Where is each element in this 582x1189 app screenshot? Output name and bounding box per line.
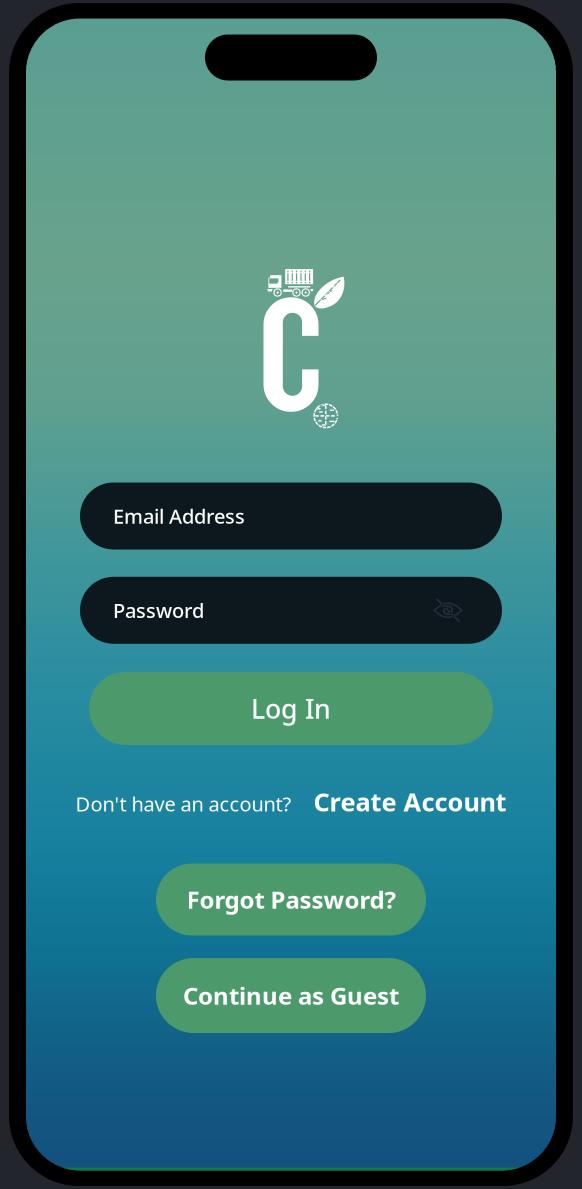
staticText: Don't have an account? [75,790,291,817]
button[interactable]: Password [80,577,502,644]
staticText: Create Account [313,785,506,818]
staticText: Log In [251,691,331,726]
button[interactable]: Log In [89,672,493,745]
staticText: Forgot Password? [186,884,395,915]
staticText: Email Address [113,503,245,529]
button[interactable]: Email Address [80,482,502,549]
button[interactable]: Forgot Password? [156,863,426,935]
button[interactable]: Continue as Guest [156,958,426,1033]
staticText: Password [113,597,204,624]
staticText: Continue as Guest [183,980,399,1011]
button[interactable]: Create Account [313,785,506,818]
